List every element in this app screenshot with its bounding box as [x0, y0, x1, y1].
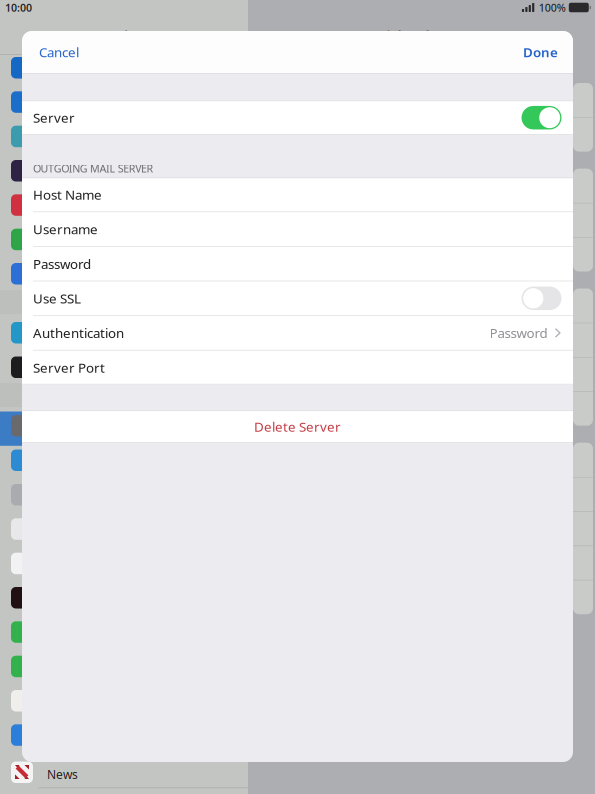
staticText: 10:00: [5, 0, 32, 15]
staticText: Server: [33, 109, 75, 126]
staticText: 100%: [539, 0, 566, 15]
staticText: Cancel: [39, 43, 79, 61]
button[interactable]: Authentication: [22, 316, 573, 350]
staticText: Authentication: [33, 324, 124, 342]
button[interactable]: Server Port: [22, 351, 573, 384]
button[interactable]: Username: [22, 212, 573, 246]
staticText: Delete Server: [254, 418, 341, 435]
button[interactable]: Cancel: [39, 37, 79, 67]
staticText: Host Name: [33, 186, 102, 203]
staticText: Done: [523, 43, 558, 61]
staticText: Server Port: [33, 359, 105, 376]
staticText: Password: [489, 324, 547, 342]
button[interactable]: Password: [22, 247, 573, 281]
staticText: News: [47, 766, 78, 782]
staticText: Settings: [95, 26, 153, 45]
button[interactable]: Host Name: [22, 178, 573, 211]
button[interactable]: Server: [22, 101, 573, 135]
staticText: OUTGOING MAIL SERVER: [33, 161, 153, 176]
staticText: Username: [33, 220, 98, 238]
button[interactable]: Use SSL: [22, 281, 573, 315]
button[interactable]: Delete Server: [22, 410, 573, 443]
staticText: Use SSL: [33, 289, 81, 307]
staticText: Password: [33, 255, 91, 273]
staticText: Brunswick Advancement: [333, 26, 509, 45]
button[interactable]: Done: [523, 37, 558, 67]
